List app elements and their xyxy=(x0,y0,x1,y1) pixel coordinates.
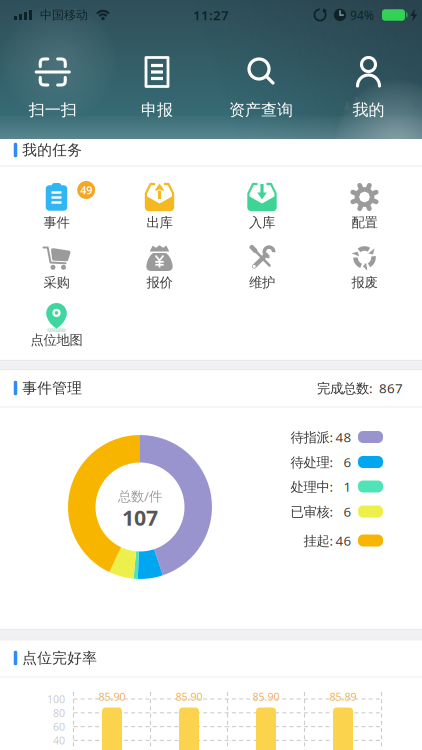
staticText: 出库 xyxy=(146,214,172,231)
staticText: 85.90 xyxy=(252,689,279,704)
staticText: 报价 xyxy=(146,274,172,291)
staticText: 40 xyxy=(53,733,65,747)
staticText: 49 xyxy=(80,183,92,197)
staticText: 待指派: xyxy=(290,428,333,446)
staticText: 点位地图 xyxy=(30,332,82,348)
staticText: 挂起: xyxy=(303,532,333,549)
staticText: 配置 xyxy=(351,214,377,231)
staticText: 报废 xyxy=(351,274,377,291)
button[interactable]: 配置 xyxy=(316,179,412,245)
staticText: 1 xyxy=(343,478,351,495)
staticText: 85.89 xyxy=(329,689,356,704)
button[interactable]: 申报 xyxy=(107,48,207,128)
staticText: 我的 xyxy=(352,100,384,120)
button[interactable]: 点位地图 xyxy=(8,299,104,365)
staticText: 事件 xyxy=(43,214,69,231)
button[interactable]: 采购 xyxy=(8,239,104,305)
staticText: 我的任务 xyxy=(22,141,82,159)
staticText: 已审核: xyxy=(290,503,333,520)
button[interactable]: 我的 xyxy=(318,48,418,128)
staticText: 完成总数: 867 xyxy=(317,379,403,397)
button[interactable]: 维护 xyxy=(214,239,310,305)
button[interactable]: 扫一扫 xyxy=(3,48,103,128)
staticText: 48 xyxy=(335,428,351,446)
button[interactable]: 资产查询 xyxy=(211,48,311,128)
button[interactable]: 报废 xyxy=(316,239,412,305)
button[interactable]: 出库 xyxy=(111,179,207,245)
button[interactable]: 事件 xyxy=(8,179,104,245)
staticText: 点位完好率 xyxy=(22,649,97,667)
staticText: 申报 xyxy=(141,100,173,120)
button[interactable]: 入库 xyxy=(214,179,310,245)
staticText: 待处理: xyxy=(290,453,333,471)
staticText: 60 xyxy=(53,719,65,734)
staticText: 扫一扫 xyxy=(29,100,77,120)
staticText: 6 xyxy=(343,503,351,520)
staticText: 维护 xyxy=(249,274,275,291)
staticText: 94% xyxy=(350,7,374,23)
button[interactable]: 报价 xyxy=(111,239,207,305)
staticText: 入库 xyxy=(249,214,275,231)
staticText: 资产查询 xyxy=(229,100,293,120)
staticText: 6 xyxy=(343,453,351,471)
staticText: 采购 xyxy=(43,274,69,291)
staticText: 事件管理 xyxy=(22,379,82,397)
staticText: 85.90 xyxy=(175,689,202,704)
staticText: 处理中: xyxy=(290,478,333,495)
staticText: 中国移动 xyxy=(40,8,88,22)
staticText: 100 xyxy=(47,692,65,706)
staticText: 46 xyxy=(335,532,351,549)
staticText: 80 xyxy=(53,706,65,720)
staticText: 总数/件 xyxy=(118,487,162,505)
staticText: 11:27 xyxy=(193,6,229,24)
staticText: 85.90 xyxy=(98,689,125,704)
staticText: 107 xyxy=(122,503,158,532)
